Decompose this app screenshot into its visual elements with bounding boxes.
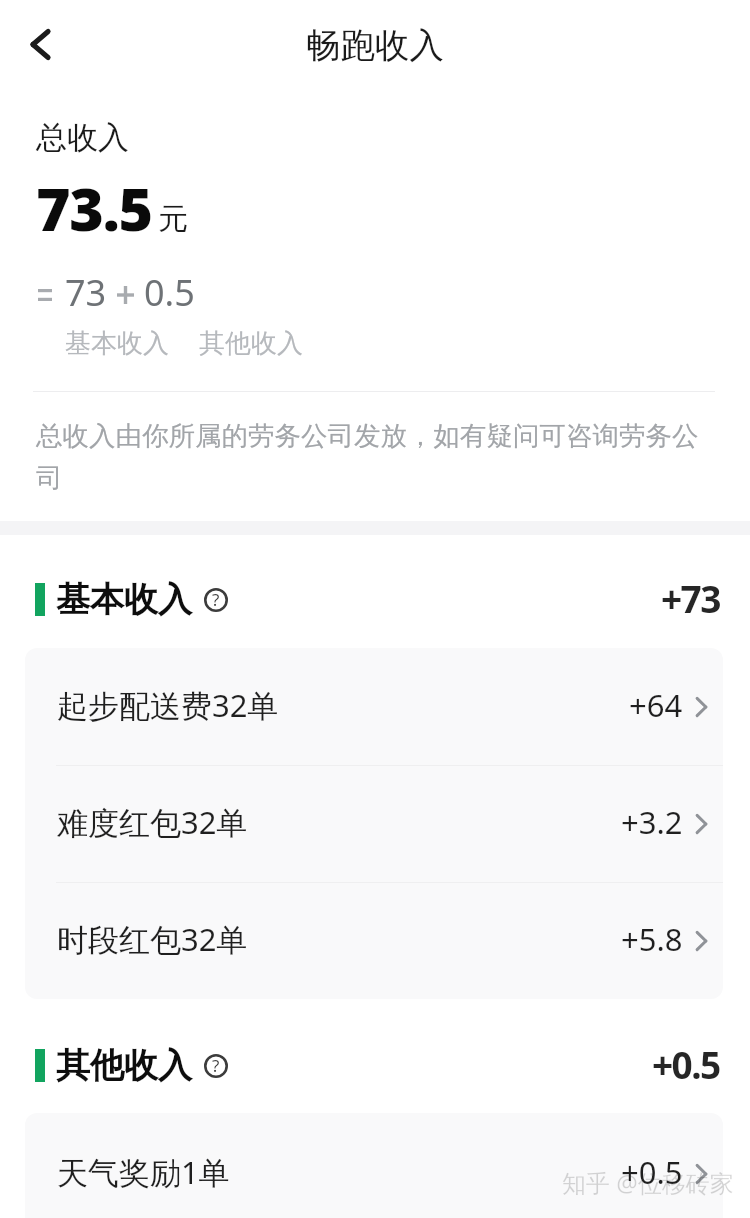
- staticText: 元: [158, 200, 188, 238]
- staticText: 73.5: [36, 168, 152, 248]
- staticText: 畅跑收入: [306, 24, 444, 67]
- staticText: 总收入: [36, 118, 129, 157]
- button[interactable]: 起步配送费32单: [25, 648, 723, 765]
- button[interactable]: 时段红包32单: [25, 883, 723, 999]
- staticText: +64: [629, 684, 683, 726]
- staticText: 其他收入: [56, 1044, 192, 1087]
- staticText: 知乎 @位移砖家: [562, 1166, 734, 1199]
- button[interactable]: Help about 基本收入: [201, 585, 231, 615]
- staticText: 总收入由你所属的劳务公司发放，如有疑问可咨询劳务公司: [36, 419, 706, 495]
- staticText: 时段红包32单: [57, 918, 248, 960]
- staticText: 基本收入: [65, 327, 169, 360]
- staticText: +73: [661, 573, 720, 623]
- button[interactable]: 天气奖励1单: [25, 1113, 723, 1218]
- button[interactable]: Help about 其他收入: [201, 1051, 231, 1081]
- staticText: 基本收入: [56, 578, 192, 621]
- staticText: +0.5: [652, 1039, 720, 1089]
- staticText: 73: [65, 268, 107, 314]
- staticText: 天气奖励1单: [57, 1151, 230, 1193]
- staticText: 其他收入: [199, 327, 303, 360]
- staticText: +0.5: [621, 1151, 683, 1193]
- button[interactable]: Back: [8, 12, 72, 76]
- staticText: 难度红包32单: [57, 801, 248, 843]
- staticText: 0.5: [144, 268, 195, 314]
- staticText: 起步配送费32单: [57, 684, 279, 726]
- staticText: ?: [212, 588, 220, 611]
- staticText: ?: [212, 1054, 220, 1077]
- staticText: +3.2: [621, 801, 683, 843]
- staticText: +5.8: [621, 918, 683, 960]
- button[interactable]: 难度红包32单: [25, 766, 723, 882]
